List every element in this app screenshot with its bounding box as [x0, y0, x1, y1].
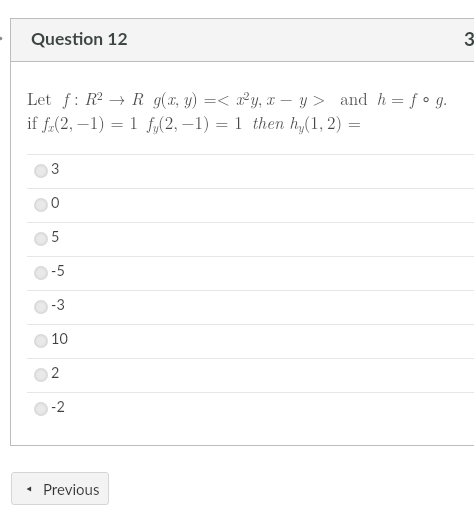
- button[interactable]: 2: [11, 359, 474, 392]
- staticText: 5: [51, 228, 60, 245]
- staticText: if fx(2, −1) = 1 fy(2, −1) = 1 then hy(1…: [27, 110, 361, 135]
- button[interactable]: -2: [11, 393, 474, 426]
- staticText: Question 12: [31, 28, 128, 49]
- button[interactable]: Question 12: [11, 19, 474, 61]
- button[interactable]: 3: [11, 155, 474, 188]
- button[interactable]: 10: [11, 325, 474, 358]
- button[interactable]: Previous: [11, 472, 109, 505]
- staticText: 3: [464, 27, 474, 50]
- button[interactable]: -3: [11, 291, 474, 324]
- staticText: -3: [51, 296, 65, 313]
- staticText: 2: [51, 364, 60, 381]
- button[interactable]: 5: [11, 223, 474, 256]
- staticText: 10: [51, 330, 68, 347]
- staticText: -5: [51, 262, 65, 279]
- staticText: 3: [51, 160, 60, 177]
- staticText: 0: [51, 194, 60, 211]
- staticText: -2: [51, 398, 65, 415]
- staticText: Let f : R2 → R g(x, y) =< x2y, x − y > a…: [27, 86, 448, 110]
- button[interactable]: -5: [11, 257, 474, 290]
- staticText: Previous: [43, 480, 100, 498]
- button[interactable]: 0: [11, 189, 474, 222]
